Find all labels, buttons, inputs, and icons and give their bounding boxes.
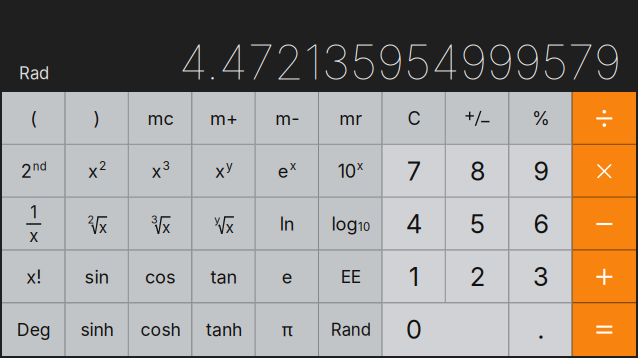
button[interactable]: second <box>2 145 65 198</box>
button[interactable]: mc <box>129 92 192 145</box>
button[interactable]: e <box>256 250 319 303</box>
button[interactable]: equals <box>573 303 636 356</box>
button[interactable]: y root of x <box>192 198 256 250</box>
staticText: m- <box>275 107 299 129</box>
staticText: mc <box>147 107 173 129</box>
staticText: cosh <box>140 319 180 340</box>
staticText: 6 <box>533 209 548 239</box>
button[interactable]: x to the power y <box>192 145 256 198</box>
staticText: tanh <box>206 319 242 340</box>
button[interactable]: sin <box>65 250 129 303</box>
button[interactable]: 3 <box>509 250 573 303</box>
button[interactable]: Rand <box>319 303 382 356</box>
button[interactable]: cube root of x <box>129 198 192 250</box>
staticText: π <box>282 319 293 340</box>
staticText: x <box>88 160 98 182</box>
button[interactable]: EE <box>319 250 382 303</box>
staticText: EE <box>341 266 361 287</box>
staticText: e <box>278 160 289 182</box>
button[interactable]: multiply <box>573 145 636 198</box>
staticText: 3 <box>533 261 549 292</box>
button[interactable]: 0 <box>382 303 509 356</box>
staticText: sinh <box>81 319 114 340</box>
staticText: log <box>331 213 357 235</box>
button[interactable]: ) <box>65 92 129 145</box>
button[interactable]: 6 <box>509 198 573 250</box>
staticText: x <box>225 218 233 237</box>
button[interactable]: plus <box>573 250 636 303</box>
button[interactable]: 2 <box>446 250 509 303</box>
button[interactable]: ( <box>2 92 65 145</box>
staticText: x <box>357 158 364 173</box>
staticText: 8 <box>470 156 485 187</box>
button[interactable]: x cubed <box>129 145 192 198</box>
staticText: y <box>214 213 220 226</box>
staticText: 4.472135954999579 <box>179 33 621 91</box>
staticText: x <box>151 160 161 182</box>
button[interactable]: minus <box>573 198 636 250</box>
staticText: 1 <box>30 202 37 222</box>
button[interactable]: x factorial <box>2 250 65 303</box>
button[interactable]: m minus <box>256 92 319 145</box>
button[interactable]: square root of x <box>65 198 129 250</box>
staticText: x <box>162 218 170 237</box>
staticText: mr <box>339 107 362 129</box>
button[interactable]: cos <box>129 250 192 303</box>
staticText: ( <box>30 107 37 129</box>
button[interactable]: 9 <box>509 145 573 198</box>
staticText: 5 <box>470 209 485 239</box>
button[interactable]: cosh <box>129 303 192 356</box>
staticText: 2 <box>87 213 94 226</box>
button[interactable]: mr <box>319 92 382 145</box>
staticText: 10 <box>338 160 356 182</box>
button[interactable]: Clear <box>382 92 446 145</box>
button[interactable]: pi <box>256 303 319 356</box>
button[interactable]: tanh <box>192 303 256 356</box>
button[interactable]: 10 to the power x <box>319 145 382 198</box>
button[interactable]: decimal point <box>509 303 573 356</box>
staticText: ) <box>94 107 101 129</box>
staticText: Rad <box>19 63 49 83</box>
staticText: 2 <box>99 158 106 173</box>
button[interactable]: m+ <box>192 92 256 145</box>
button[interactable]: log base 10 <box>319 198 382 250</box>
button[interactable]: sinh <box>65 303 129 356</box>
button[interactable]: 7 <box>382 145 446 198</box>
staticText: x <box>215 160 225 182</box>
staticText: cos <box>145 266 176 288</box>
staticText: 10 <box>358 220 370 234</box>
staticText: . <box>537 314 544 345</box>
staticText: % <box>532 107 550 129</box>
button[interactable]: one over x <box>2 198 65 250</box>
button[interactable]: natural log <box>256 198 319 250</box>
button[interactable]: tan <box>192 250 256 303</box>
staticText: 7 <box>407 156 421 187</box>
button[interactable]: x squared <box>65 145 129 198</box>
button[interactable]: % <box>509 92 573 145</box>
staticText: 3 <box>162 158 169 173</box>
button[interactable]: 1 <box>382 250 446 303</box>
staticText: 2 <box>470 261 485 292</box>
staticText: 1 <box>409 261 419 292</box>
button[interactable]: divide <box>573 92 636 145</box>
button[interactable]: 5 <box>446 198 509 250</box>
staticText: x <box>290 158 297 173</box>
staticText: 2 <box>21 160 32 182</box>
staticText: Deg <box>17 319 51 340</box>
staticText: x! <box>26 266 41 288</box>
button[interactable]: 4 <box>382 198 446 250</box>
staticText: nd <box>33 159 47 173</box>
button[interactable]: e to the power x <box>256 145 319 198</box>
staticText: e <box>282 266 293 288</box>
staticText: x <box>99 218 107 237</box>
staticText: 4 <box>406 209 422 239</box>
staticText: y <box>226 158 233 173</box>
staticText: 0 <box>406 314 422 345</box>
staticText: 9 <box>533 156 548 187</box>
staticText: sin <box>85 266 110 288</box>
staticText: 3 <box>151 213 158 226</box>
staticText: ln <box>280 213 295 235</box>
button[interactable]: Deg <box>2 303 65 356</box>
button[interactable]: 8 <box>446 145 509 198</box>
button[interactable]: plus minus <box>446 92 509 145</box>
